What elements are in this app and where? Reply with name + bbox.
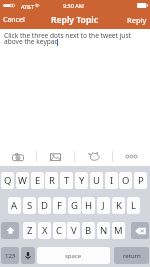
staticText: A: [11, 199, 18, 212]
staticText: W: [18, 174, 27, 187]
staticText: V: [71, 224, 77, 237]
button[interactable]: F: [53, 197, 66, 214]
button[interactable]: G: [68, 197, 81, 214]
button[interactable]: Tweet: [75, 147, 112, 166]
button[interactable]: More options: [113, 147, 150, 166]
staticText: U: [93, 174, 100, 187]
button[interactable]: W: [16, 172, 29, 189]
staticText: O: [122, 174, 130, 187]
staticText: T: [64, 174, 70, 187]
staticText: 9:50 AM: [63, 2, 84, 9]
button[interactable]: Reply: [123, 12, 150, 28]
staticText: N: [100, 224, 108, 237]
staticText: R: [49, 174, 55, 187]
button[interactable]: L: [127, 197, 140, 214]
staticText: space: [65, 252, 82, 260]
button[interactable]: T: [60, 172, 73, 189]
button[interactable]: H: [82, 197, 95, 214]
staticText: Reply: [127, 15, 147, 25]
button[interactable]: Insert image: [37, 147, 74, 166]
button[interactable]: B: [82, 222, 95, 239]
button[interactable]: S: [23, 197, 36, 214]
button[interactable]: R: [45, 172, 58, 189]
staticText: L: [131, 199, 136, 212]
staticText: P: [138, 174, 144, 187]
staticText: M: [114, 224, 123, 237]
staticText: B: [85, 224, 92, 237]
button[interactable]: Y: [75, 172, 88, 189]
staticText: Reply Topic: [51, 14, 99, 26]
button[interactable]: 123: [1, 247, 19, 264]
button[interactable]: Cancel: [0, 12, 29, 28]
staticText: X: [42, 224, 48, 237]
button[interactable]: X: [38, 222, 51, 239]
staticText: Cancel: [3, 15, 25, 25]
button[interactable]: O: [119, 172, 132, 189]
button[interactable]: space: [37, 247, 110, 264]
staticText: E: [35, 174, 41, 187]
staticText: G: [71, 199, 78, 212]
staticText: S: [27, 199, 33, 212]
staticText: I: [110, 174, 114, 187]
staticText: C: [56, 224, 63, 237]
button[interactable]: Take photo: [0, 147, 36, 166]
staticText: D: [41, 199, 48, 212]
button[interactable]: Delete: [131, 222, 149, 239]
button[interactable]: K: [112, 197, 125, 214]
staticText: Y: [79, 174, 85, 187]
staticText: K: [116, 199, 122, 212]
staticText: Click the three dots next to the tweet j…: [4, 31, 148, 46]
button[interactable]: Z: [23, 222, 36, 239]
button[interactable]: Shift: [1, 222, 19, 239]
button[interactable]: C: [53, 222, 66, 239]
button[interactable]: return: [114, 247, 149, 264]
button[interactable]: Q: [1, 172, 14, 189]
button[interactable]: A: [8, 197, 21, 214]
button[interactable]: E: [31, 172, 44, 189]
staticText: return: [123, 252, 141, 260]
button[interactable]: J: [97, 197, 110, 214]
button[interactable]: I: [105, 172, 118, 189]
staticText: F: [57, 199, 62, 212]
button[interactable]: P: [134, 172, 147, 189]
button[interactable]: V: [67, 222, 80, 239]
staticText: J: [102, 199, 105, 212]
staticText: H: [85, 199, 93, 212]
button[interactable]: N: [97, 222, 110, 239]
button[interactable]: M: [112, 222, 125, 239]
staticText: 123: [5, 252, 16, 260]
staticText: AT&T: [21, 3, 34, 10]
staticText: Z: [27, 224, 33, 237]
staticText: Q: [4, 174, 12, 187]
button[interactable]: D: [38, 197, 51, 214]
button[interactable]: Dictate: [21, 247, 35, 264]
button[interactable]: U: [90, 172, 103, 189]
